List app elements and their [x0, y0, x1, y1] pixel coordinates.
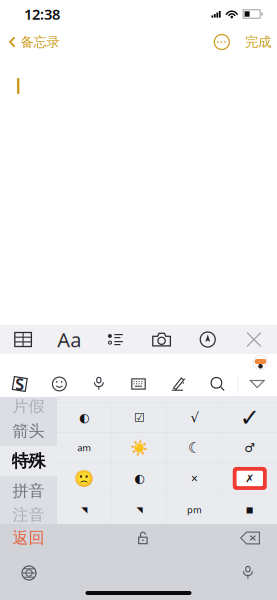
staticText: ◥: [136, 505, 142, 514]
staticText: ✓: [240, 404, 260, 431]
button[interactable]: ✓: [222, 403, 277, 432]
staticText: S: [15, 373, 24, 395]
button[interactable]: am: [57, 433, 111, 462]
staticText: 12:38: [24, 4, 60, 24]
button[interactable]: ◥: [57, 494, 111, 525]
button[interactable]: Sticker: [253, 355, 269, 370]
button[interactable]: 拼音: [0, 476, 57, 506]
button[interactable]: Camera: [138, 325, 185, 354]
button[interactable]: Emoji: [40, 371, 79, 397]
button[interactable]: Delete: [229, 524, 271, 552]
button[interactable]: ☀️: [112, 433, 167, 462]
button[interactable]: 返回: [0, 524, 57, 552]
button[interactable]: Handwriting: [158, 371, 198, 397]
staticText: ☀️: [130, 439, 148, 456]
staticText: 注音: [12, 505, 44, 525]
button[interactable]: Search: [198, 371, 237, 397]
button[interactable]: ×: [167, 463, 222, 494]
staticText: 备忘录: [21, 34, 60, 50]
staticText: 完成: [245, 34, 271, 50]
button[interactable]: 注音: [0, 506, 57, 524]
button[interactable]: ☑: [112, 403, 167, 432]
button[interactable]: ♂: [222, 433, 277, 462]
button[interactable]: ■: [222, 494, 277, 525]
staticText: ☑: [134, 411, 145, 424]
button[interactable]: Table: [0, 325, 46, 354]
button[interactable]: pm: [167, 494, 222, 525]
button[interactable]: 完成: [242, 29, 274, 55]
button[interactable]: Hide keyboard: [237, 371, 277, 397]
button[interactable]: 备忘录: [0, 28, 60, 56]
button[interactable]: Keyboard: [119, 371, 158, 397]
button[interactable]: Text style: [46, 325, 92, 354]
staticText: ◐: [134, 472, 144, 485]
staticText: ✗: [245, 472, 254, 484]
button[interactable]: Close keyboard: [231, 325, 277, 354]
staticText: ■: [246, 505, 254, 514]
button[interactable]: Checklist: [92, 325, 138, 354]
staticText: 返回: [12, 528, 44, 548]
staticText: 片假: [12, 397, 44, 416]
staticText: 🙁: [74, 469, 94, 488]
button[interactable]: 箭头: [0, 416, 57, 446]
button[interactable]: Switch keyboard: [12, 562, 46, 584]
staticText: ♂: [244, 441, 255, 454]
button[interactable]: ☾: [167, 433, 222, 462]
button[interactable]: ◐: [112, 463, 167, 494]
staticText: am: [77, 442, 91, 454]
button[interactable]: ✗: [222, 463, 277, 494]
staticText: Aa: [57, 326, 81, 353]
button[interactable]: Markup: [185, 325, 231, 354]
staticText: ◐: [79, 411, 89, 424]
staticText: ☾: [188, 439, 201, 456]
button[interactable]: Voice input: [79, 371, 119, 397]
staticText: 特殊: [11, 450, 45, 472]
button[interactable]: √: [167, 403, 222, 432]
staticText: ×: [191, 470, 198, 486]
button[interactable]: Shift lock: [123, 524, 163, 552]
staticText: pm: [187, 503, 202, 516]
button[interactable]: 🙁: [57, 463, 111, 494]
staticText: 拼音: [12, 481, 44, 501]
button[interactable]: Sogou: [0, 371, 40, 397]
button[interactable]: 片假: [0, 397, 57, 416]
button[interactable]: More options: [211, 29, 233, 55]
button[interactable]: ◐: [57, 403, 111, 432]
button[interactable]: Dictation: [231, 562, 265, 584]
staticText: ◥: [81, 505, 87, 514]
staticText: 箭头: [12, 421, 44, 441]
staticText: √: [191, 410, 199, 425]
button[interactable]: 特殊: [0, 446, 57, 476]
button[interactable]: ◥: [112, 494, 167, 525]
